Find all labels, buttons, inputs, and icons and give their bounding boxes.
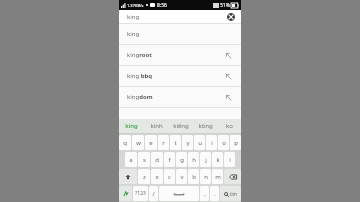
button[interactable]: king (119, 10, 241, 23)
staticText: t (174, 139, 177, 147)
button[interactable]: w (132, 135, 144, 150)
button[interactable]: x (151, 169, 163, 184)
button[interactable]: i (206, 135, 217, 150)
staticText: j (205, 156, 207, 164)
staticText: a (129, 156, 133, 164)
staticText: i (211, 139, 213, 147)
staticText: s (143, 156, 146, 164)
button[interactable]: z (138, 169, 150, 184)
button[interactable]: Switch language (119, 186, 132, 201)
button[interactable]: a (125, 152, 137, 167)
button[interactable]: Insert suggestion (223, 71, 233, 81)
staticText: g (180, 156, 184, 164)
staticText: ko (226, 122, 233, 130)
button[interactable]: kinh (144, 119, 169, 133)
button[interactable]: q (119, 135, 131, 150)
button[interactable]: d (151, 152, 163, 167)
button[interactable]: j (200, 152, 211, 167)
button[interactable]: f (164, 152, 175, 167)
button[interactable]: p (230, 135, 241, 150)
staticText: r (162, 139, 165, 147)
button[interactable]: k (212, 152, 223, 167)
staticText: 1.37KB/s (127, 3, 144, 8)
button[interactable]: Clear query (227, 13, 235, 21)
button[interactable]: ?123 (133, 186, 148, 201)
button[interactable]: u (194, 135, 205, 150)
button[interactable]: g (176, 152, 187, 167)
staticText: m (215, 173, 221, 181)
button[interactable]: . (210, 186, 219, 201)
button[interactable]: kiếng (169, 119, 193, 133)
staticText: u (198, 139, 202, 147)
staticText: e (149, 139, 153, 147)
button[interactable]: r (158, 135, 169, 150)
button[interactable]: ko (217, 119, 241, 133)
staticText: king (127, 13, 140, 21)
staticText: c (168, 173, 171, 181)
button[interactable]: v (176, 169, 187, 184)
button[interactable]: Shift (119, 169, 137, 184)
button[interactable]: b (188, 169, 199, 184)
staticText: z (143, 173, 146, 181)
staticText: p (234, 139, 238, 147)
staticText: o (222, 139, 226, 147)
button[interactable]: kông (193, 119, 217, 133)
button[interactable]: c (164, 169, 175, 184)
staticText: kinh (150, 122, 163, 130)
button[interactable]: Insert suggestion (223, 50, 233, 60)
staticText: / (152, 190, 155, 198)
staticText: v (180, 173, 184, 181)
button[interactable]: kingroot (119, 45, 241, 65)
staticText: b (192, 173, 196, 181)
button[interactable]: / (149, 186, 158, 201)
staticText: l (229, 156, 231, 164)
button[interactable]: Space (159, 186, 199, 201)
button[interactable]: o (218, 135, 229, 150)
staticText: ?123 (135, 190, 146, 197)
staticText: x (155, 173, 159, 181)
staticText: . (214, 190, 216, 198)
staticText: kông (198, 122, 213, 130)
staticText: 8:56 (157, 2, 167, 9)
button[interactable]: n (200, 169, 211, 184)
staticText: king (127, 30, 140, 38)
staticText: n (204, 173, 208, 181)
button[interactable]: y (182, 135, 193, 150)
button[interactable]: king (119, 24, 241, 44)
staticText: kingroot (127, 51, 152, 59)
button[interactable]: Backspace (224, 169, 241, 184)
button[interactable]: e (145, 135, 157, 150)
staticText: k (216, 156, 220, 164)
button[interactable]: Insert suggestion (223, 92, 233, 102)
staticText: h (192, 156, 196, 164)
staticText: , (204, 190, 206, 198)
staticText: 51% (220, 2, 230, 9)
button[interactable]: king bbq (119, 66, 241, 86)
button[interactable]: s (138, 152, 150, 167)
button[interactable]: kingdom (119, 87, 241, 107)
staticText: y (186, 139, 190, 147)
button[interactable]: Search (220, 186, 241, 201)
staticText: q (123, 139, 127, 147)
button[interactable]: l (224, 152, 235, 167)
staticText: kingdom (127, 93, 153, 101)
staticText: kiếng (173, 122, 189, 130)
button[interactable]: h (188, 152, 199, 167)
staticText: king bbq (127, 72, 153, 80)
button[interactable]: t (170, 135, 181, 150)
staticText: d (155, 156, 159, 164)
staticText: tìm (230, 191, 237, 197)
staticText: king (125, 122, 138, 130)
staticText: w (136, 139, 141, 147)
button[interactable]: king (119, 119, 144, 133)
button[interactable]: , (200, 186, 209, 201)
button[interactable]: m (212, 169, 223, 184)
staticText: f (168, 156, 171, 164)
